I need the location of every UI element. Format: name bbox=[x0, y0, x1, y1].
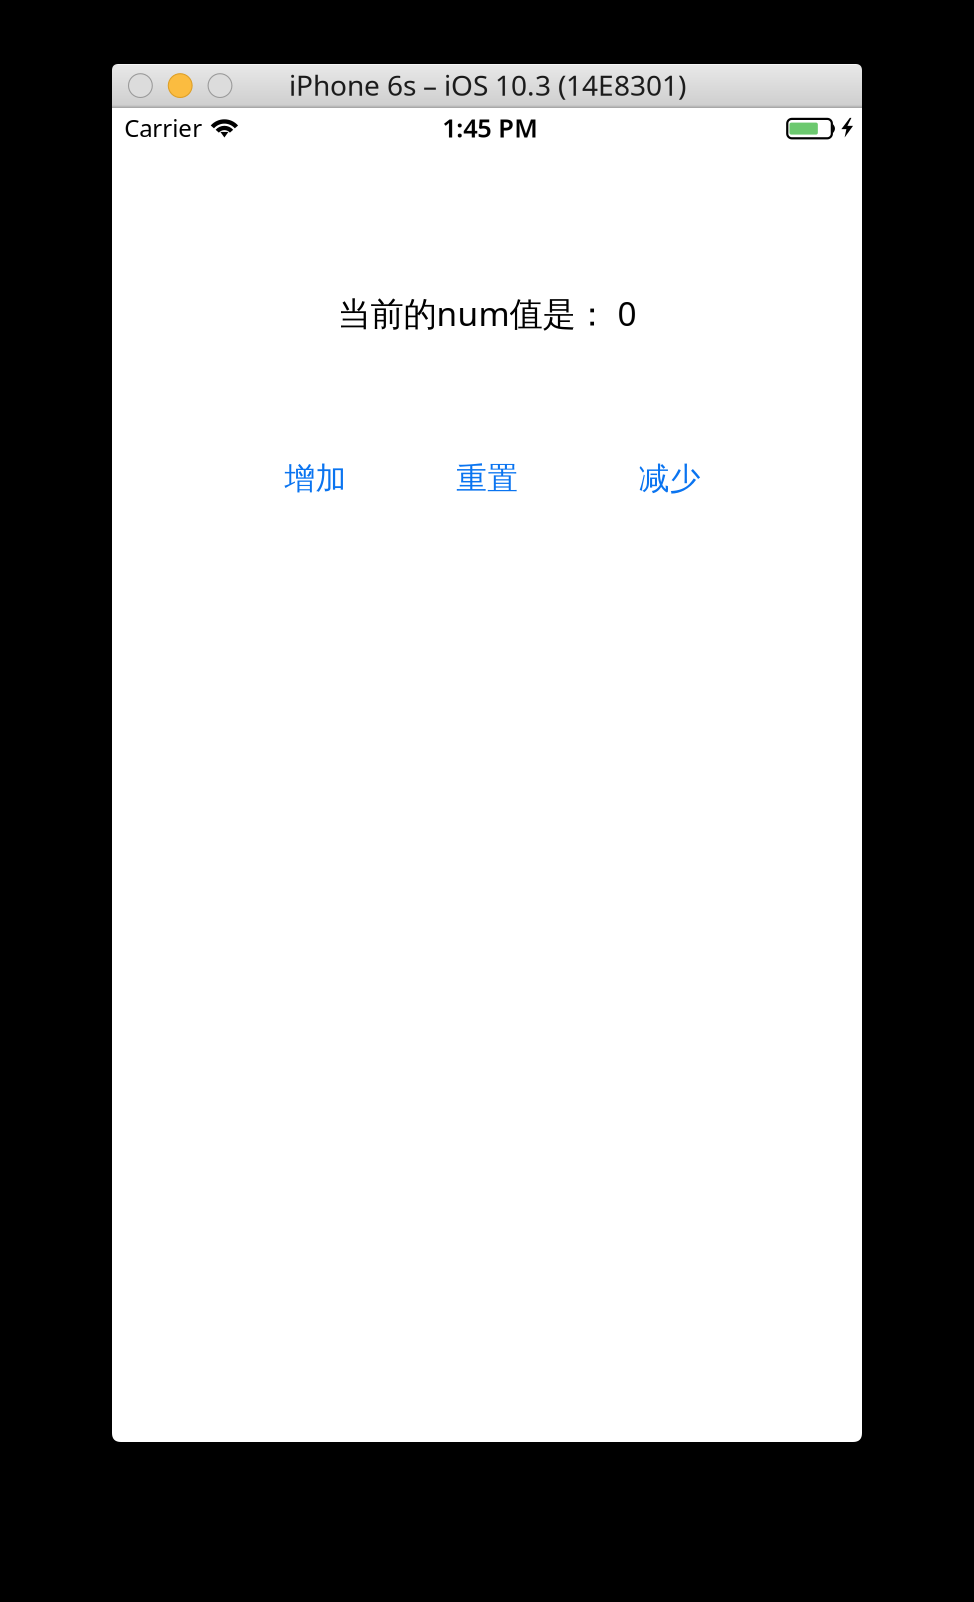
button[interactable]: Minimise window bbox=[168, 74, 192, 97]
staticText: 当前的num值是： 0 bbox=[337, 291, 636, 335]
button[interactable]: 增加 bbox=[284, 448, 346, 508]
button[interactable]: 重置 bbox=[456, 448, 518, 508]
button[interactable]: Close window bbox=[128, 74, 152, 97]
staticText: 增加 bbox=[284, 460, 346, 497]
staticText: 减少 bbox=[639, 460, 701, 497]
staticText: 重置 bbox=[456, 460, 518, 497]
button[interactable]: Zoom window bbox=[208, 74, 232, 97]
staticText: 1:45 PM bbox=[442, 111, 538, 144]
button[interactable]: 减少 bbox=[639, 448, 701, 508]
staticText: Carrier bbox=[124, 112, 202, 144]
staticText: iPhone 6s – iOS 10.3 (14E8301) bbox=[289, 66, 686, 104]
